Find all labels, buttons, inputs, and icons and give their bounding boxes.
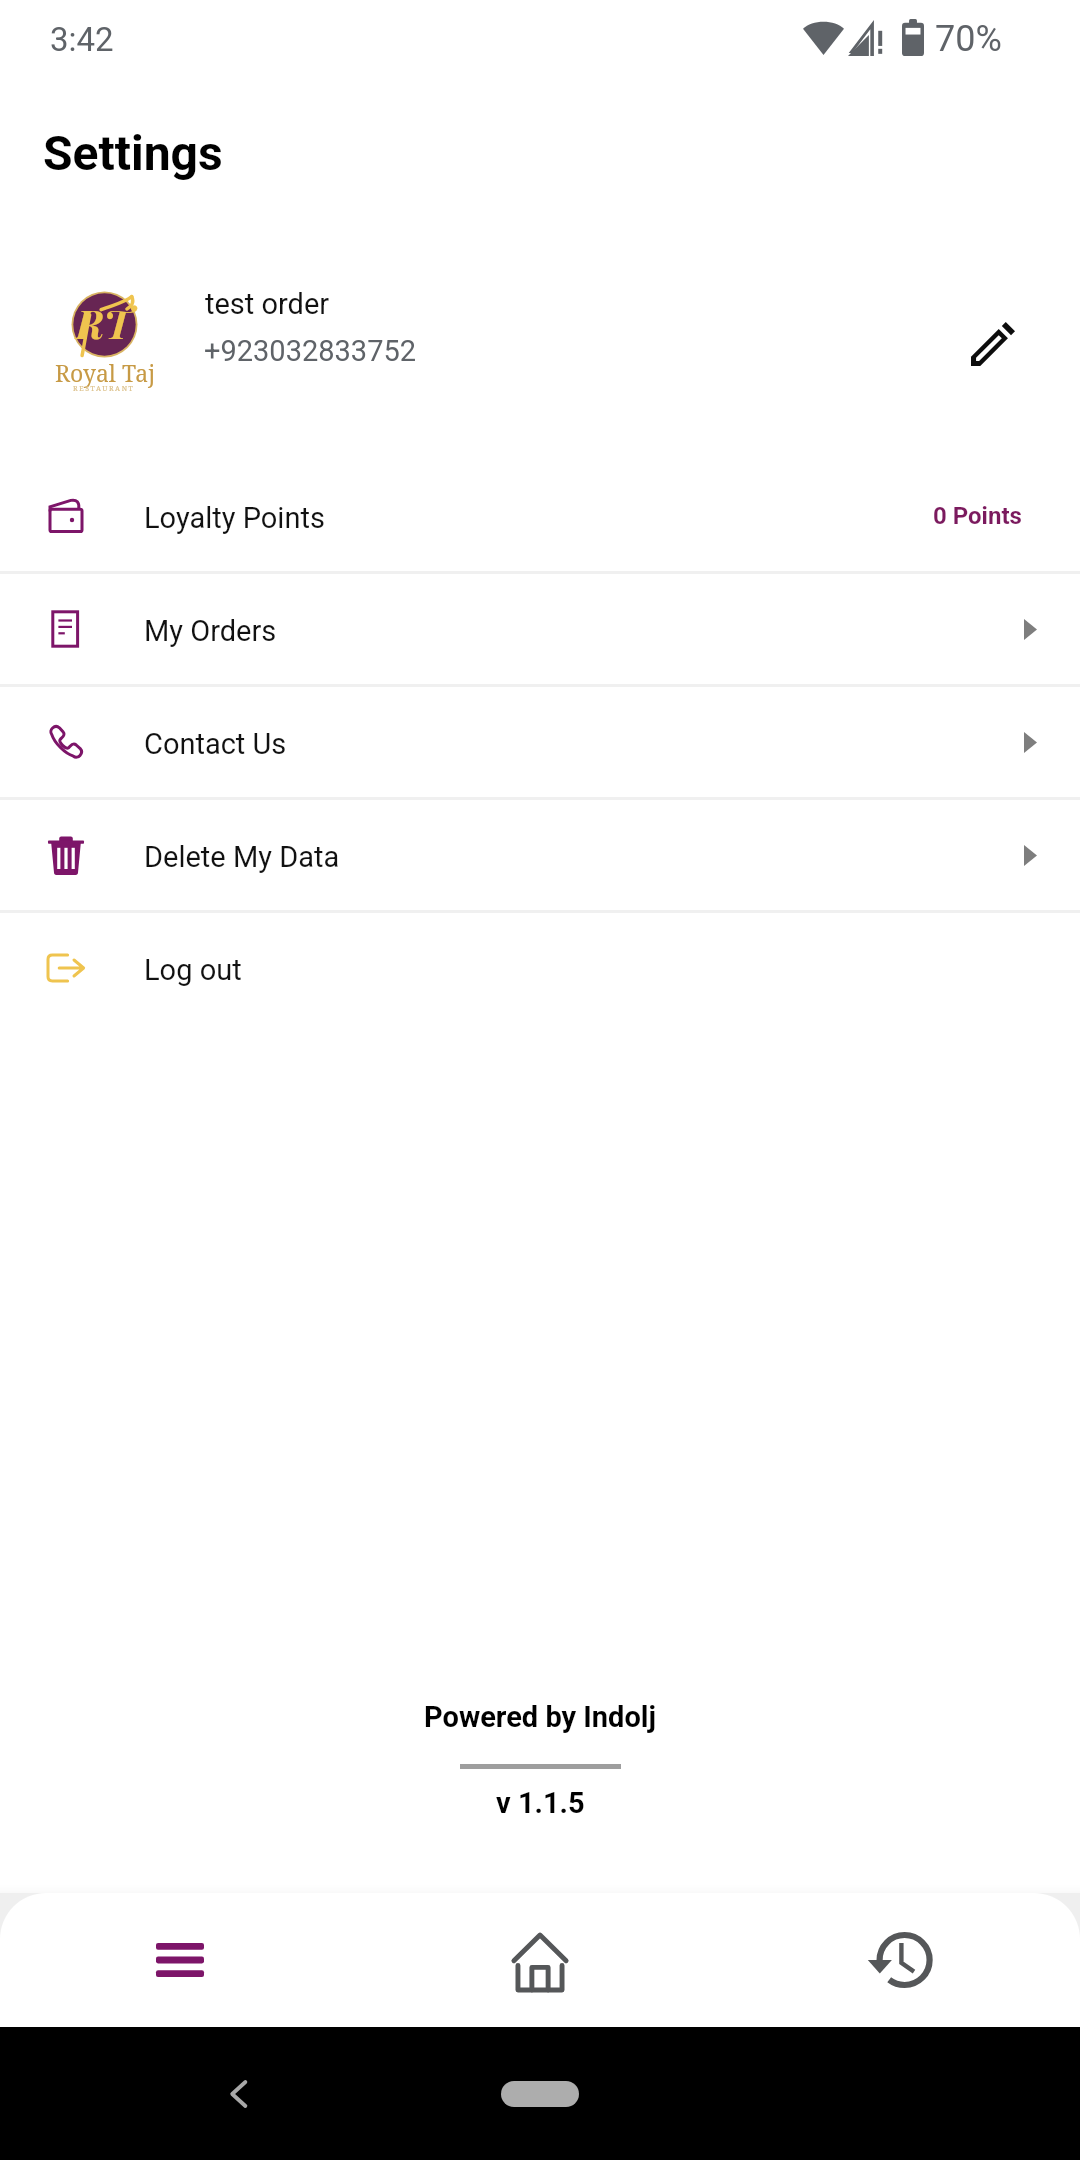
staticText: v 1.1.5 (496, 1786, 585, 1820)
button[interactable]: Contact Us (0, 687, 1080, 797)
staticText: Log out (144, 953, 242, 987)
staticText: RT (76, 297, 131, 349)
staticText: +923032833752 (204, 334, 417, 368)
button[interactable]: Loyalty Points (0, 461, 1080, 571)
staticText: Powered by Indolj (424, 1700, 656, 1734)
staticText: 0 Points (933, 502, 1022, 530)
button[interactable]: Edit profile (951, 302, 1035, 386)
staticText: test order (205, 287, 330, 321)
staticText: Loyalty Points (144, 501, 325, 535)
button[interactable]: History (720, 1893, 1080, 2027)
staticText: RESTAURANT (73, 384, 135, 394)
staticText: Delete My Data (144, 840, 340, 874)
button[interactable]: Menu (0, 1893, 360, 2027)
staticText: Settings (43, 125, 223, 181)
button[interactable]: My Orders (0, 574, 1080, 684)
staticText: Contact Us (144, 727, 287, 761)
staticText: 3:42 (50, 20, 114, 59)
staticText: Royal Taj (55, 357, 156, 388)
button[interactable]: Delete My Data (0, 800, 1080, 910)
button[interactable]: Home (360, 1893, 720, 2027)
button[interactable]: Log out (0, 913, 1080, 1023)
staticText: My Orders (144, 614, 277, 648)
staticText: 70% (935, 18, 1002, 60)
